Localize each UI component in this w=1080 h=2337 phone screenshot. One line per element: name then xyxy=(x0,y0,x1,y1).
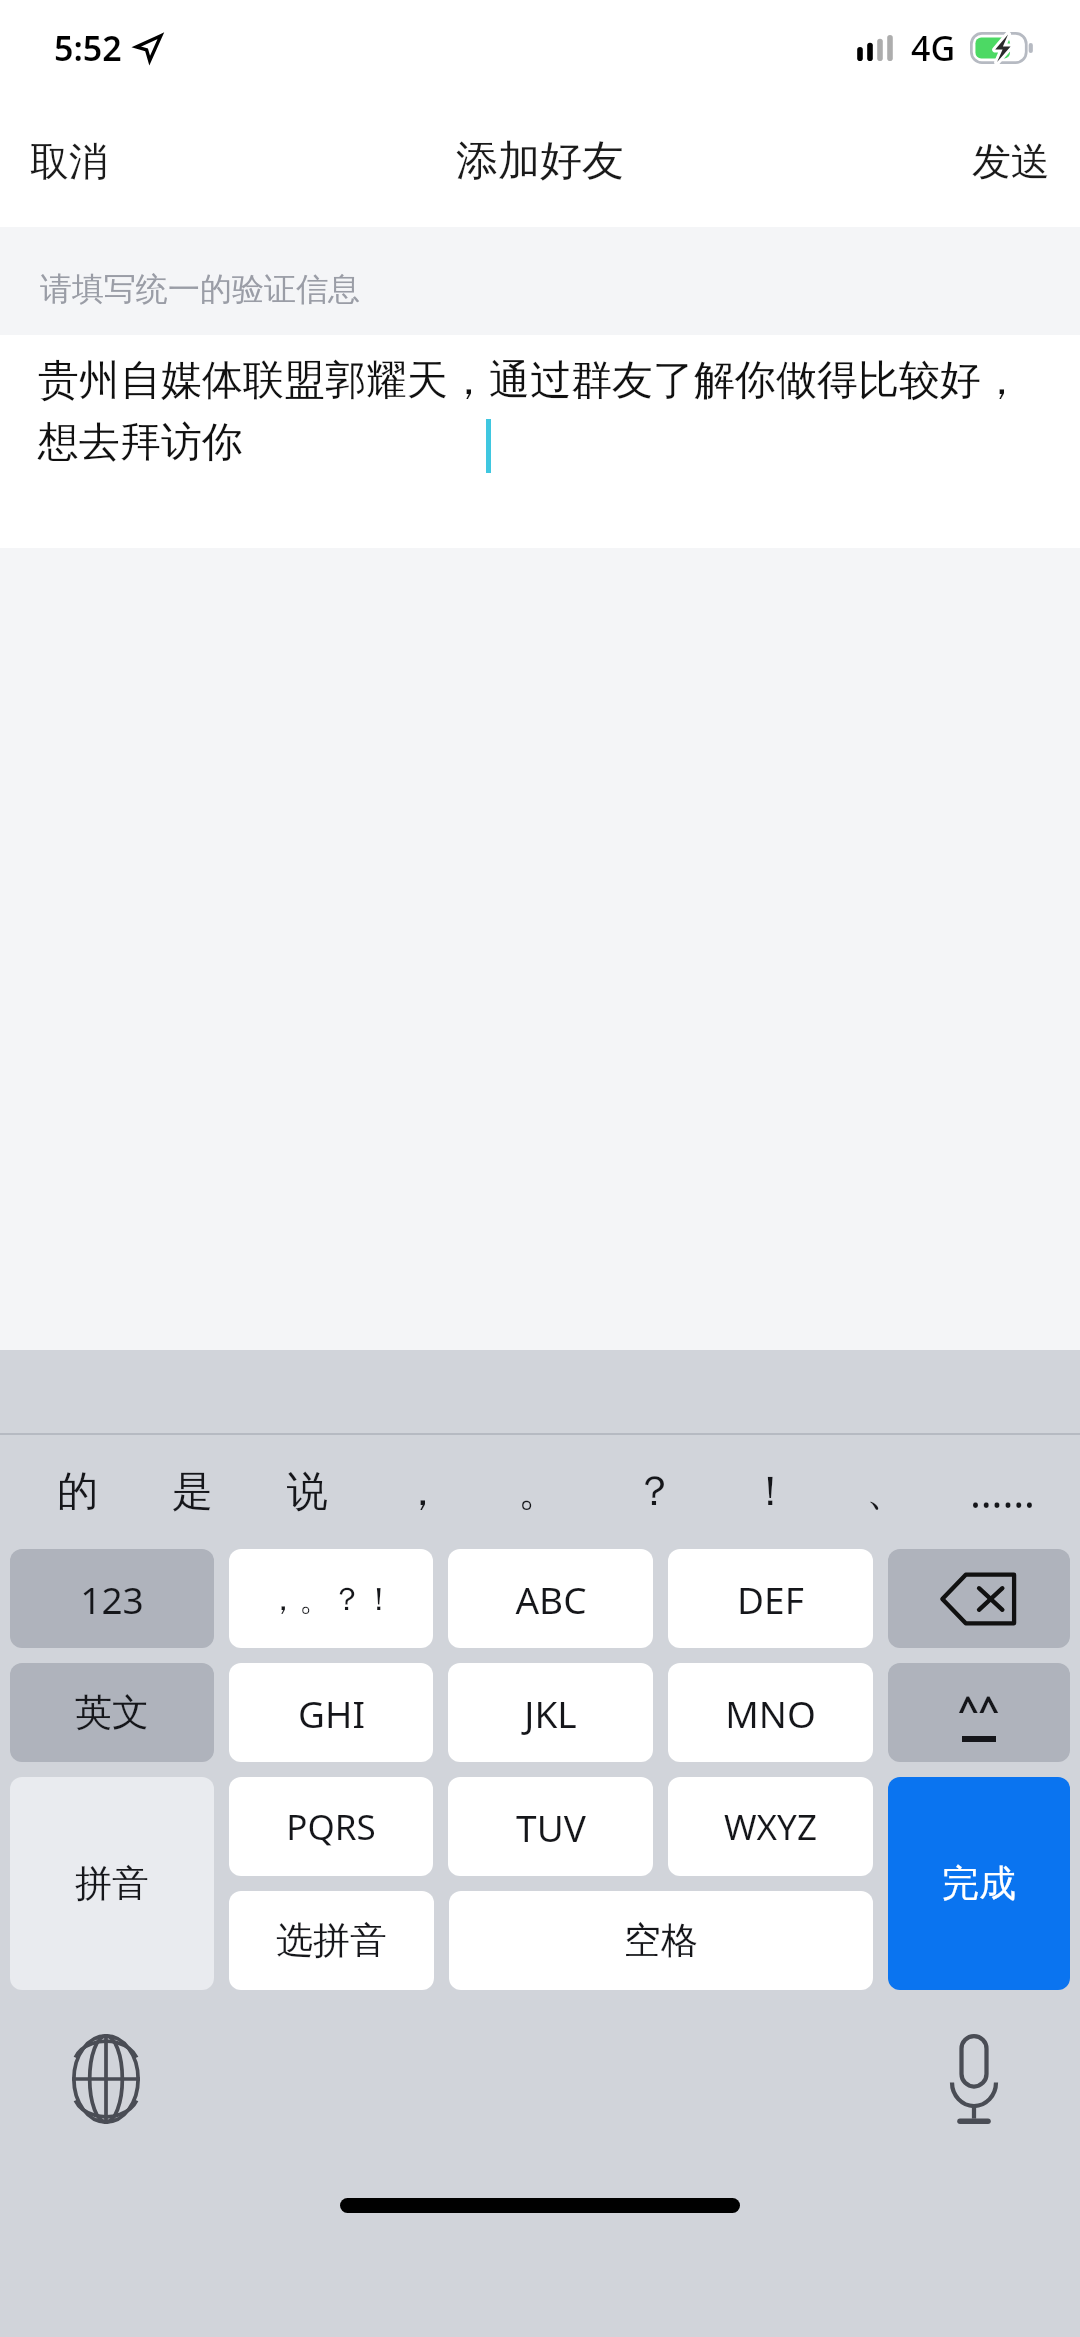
staticText: 发送 xyxy=(972,137,1050,186)
staticText: 请填写统一的验证信息 xyxy=(40,269,360,309)
staticText: 添加好友 xyxy=(456,135,624,188)
button[interactable]: 说 xyxy=(250,1435,365,1549)
staticText: TUV xyxy=(516,1802,586,1852)
staticText: 5:52 xyxy=(54,25,122,71)
button[interactable]: 英文 xyxy=(10,1663,214,1762)
button[interactable]: 是 xyxy=(135,1435,250,1549)
button[interactable]: ！ xyxy=(712,1435,828,1549)
button[interactable]: 空格 xyxy=(449,1891,873,1990)
staticText: 123 xyxy=(80,1574,144,1624)
button[interactable]: JKL xyxy=(448,1663,653,1762)
button[interactable]: 完成 xyxy=(888,1777,1070,1990)
staticText: 取消 xyxy=(30,137,108,186)
button[interactable]: …… xyxy=(944,1435,1060,1549)
staticText: …… xyxy=(970,1464,1035,1520)
button[interactable]: 选拼音 xyxy=(229,1891,434,1990)
button[interactable]: WXYZ xyxy=(668,1777,873,1876)
staticText: 的 xyxy=(57,1466,98,1518)
staticText: ， xyxy=(402,1466,443,1518)
button[interactable]: 。 xyxy=(480,1435,596,1549)
staticText: DEF xyxy=(737,1574,804,1624)
button[interactable]: 贵州自媒体联盟郭耀天，通过群友了解你做得比较好，想去拜访你 xyxy=(0,335,1080,548)
staticText: ！ xyxy=(750,1466,791,1518)
button[interactable]: Backspace xyxy=(888,1549,1070,1648)
staticText: 选拼音 xyxy=(276,1917,387,1964)
staticText: 空格 xyxy=(624,1917,698,1964)
button[interactable]: ？ xyxy=(596,1435,712,1549)
button[interactable]: GHI xyxy=(229,1663,433,1762)
button[interactable]: 123 xyxy=(10,1549,214,1648)
staticText: 完成 xyxy=(942,1860,1016,1907)
button[interactable]: ，。？！ xyxy=(229,1549,433,1648)
staticText: ABC xyxy=(515,1574,587,1624)
button[interactable]: TUV xyxy=(448,1777,653,1876)
staticText: 贵州自媒体联盟郭耀天，通过群友了解你做得比较好，想去拜访你 xyxy=(38,355,1028,468)
button[interactable]: MNO xyxy=(668,1663,873,1762)
staticText: GHI xyxy=(298,1688,365,1738)
staticText: 是 xyxy=(172,1466,213,1518)
button[interactable]: 取消 xyxy=(0,115,138,208)
staticText: PQRS xyxy=(286,1803,376,1851)
button[interactable]: Emoji xyxy=(888,1663,1070,1762)
button[interactable]: ， xyxy=(365,1435,480,1549)
button[interactable]: Switch keyboard xyxy=(58,2031,154,2127)
button[interactable]: 发送 xyxy=(942,115,1080,208)
staticText: ^^ xyxy=(958,1684,1000,1733)
button[interactable]: PQRS xyxy=(229,1777,433,1876)
staticText: JKL xyxy=(524,1688,577,1738)
button[interactable]: ABC xyxy=(448,1549,653,1648)
button[interactable]: DEF xyxy=(668,1549,873,1648)
staticText: 4G xyxy=(911,25,956,71)
staticText: ，。？！ xyxy=(267,1579,395,1619)
staticText: WXYZ xyxy=(724,1803,817,1851)
staticText: 。 xyxy=(518,1466,559,1518)
button[interactable]: 、 xyxy=(828,1435,944,1549)
staticText: ？ xyxy=(634,1466,675,1518)
staticText: 、 xyxy=(866,1466,907,1518)
staticText: 英文 xyxy=(75,1689,149,1736)
staticText: MNO xyxy=(725,1688,816,1738)
button[interactable]: 拼音 xyxy=(10,1777,214,1990)
button[interactable]: 的 xyxy=(20,1435,135,1549)
staticText: 拼音 xyxy=(75,1860,149,1907)
staticText: 说 xyxy=(287,1466,328,1518)
button[interactable]: Voice input xyxy=(926,2031,1022,2127)
